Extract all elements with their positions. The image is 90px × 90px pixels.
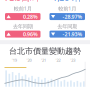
button[interactable]: 去年同期 xyxy=(49,23,85,38)
staticText: '23 xyxy=(70,57,75,63)
staticText: '20 xyxy=(26,57,31,63)
staticText: 1,284件 xyxy=(52,0,82,3)
staticText: 0.28% xyxy=(23,13,38,20)
button[interactable]: 較前1月 xyxy=(5,5,40,20)
button[interactable]: 較前1月 xyxy=(49,5,85,20)
staticText: 較前1月 xyxy=(14,5,32,12)
staticText: -28.97% xyxy=(62,13,82,20)
staticText: '22 xyxy=(56,57,61,63)
staticText: '19 xyxy=(12,57,17,63)
staticText: -21.93% xyxy=(62,31,82,38)
staticText: 去年同期 xyxy=(13,23,33,30)
staticText: 台北市價量變動趨勢 xyxy=(9,46,81,56)
staticText: 72.3萬/坪 xyxy=(4,0,40,3)
staticText: 較前1月 xyxy=(58,5,76,12)
staticText: '21 xyxy=(41,57,46,63)
staticText: 去年同期 xyxy=(57,23,77,30)
staticText: 0.96% xyxy=(23,31,38,38)
button[interactable]: 去年同期 xyxy=(5,23,40,38)
